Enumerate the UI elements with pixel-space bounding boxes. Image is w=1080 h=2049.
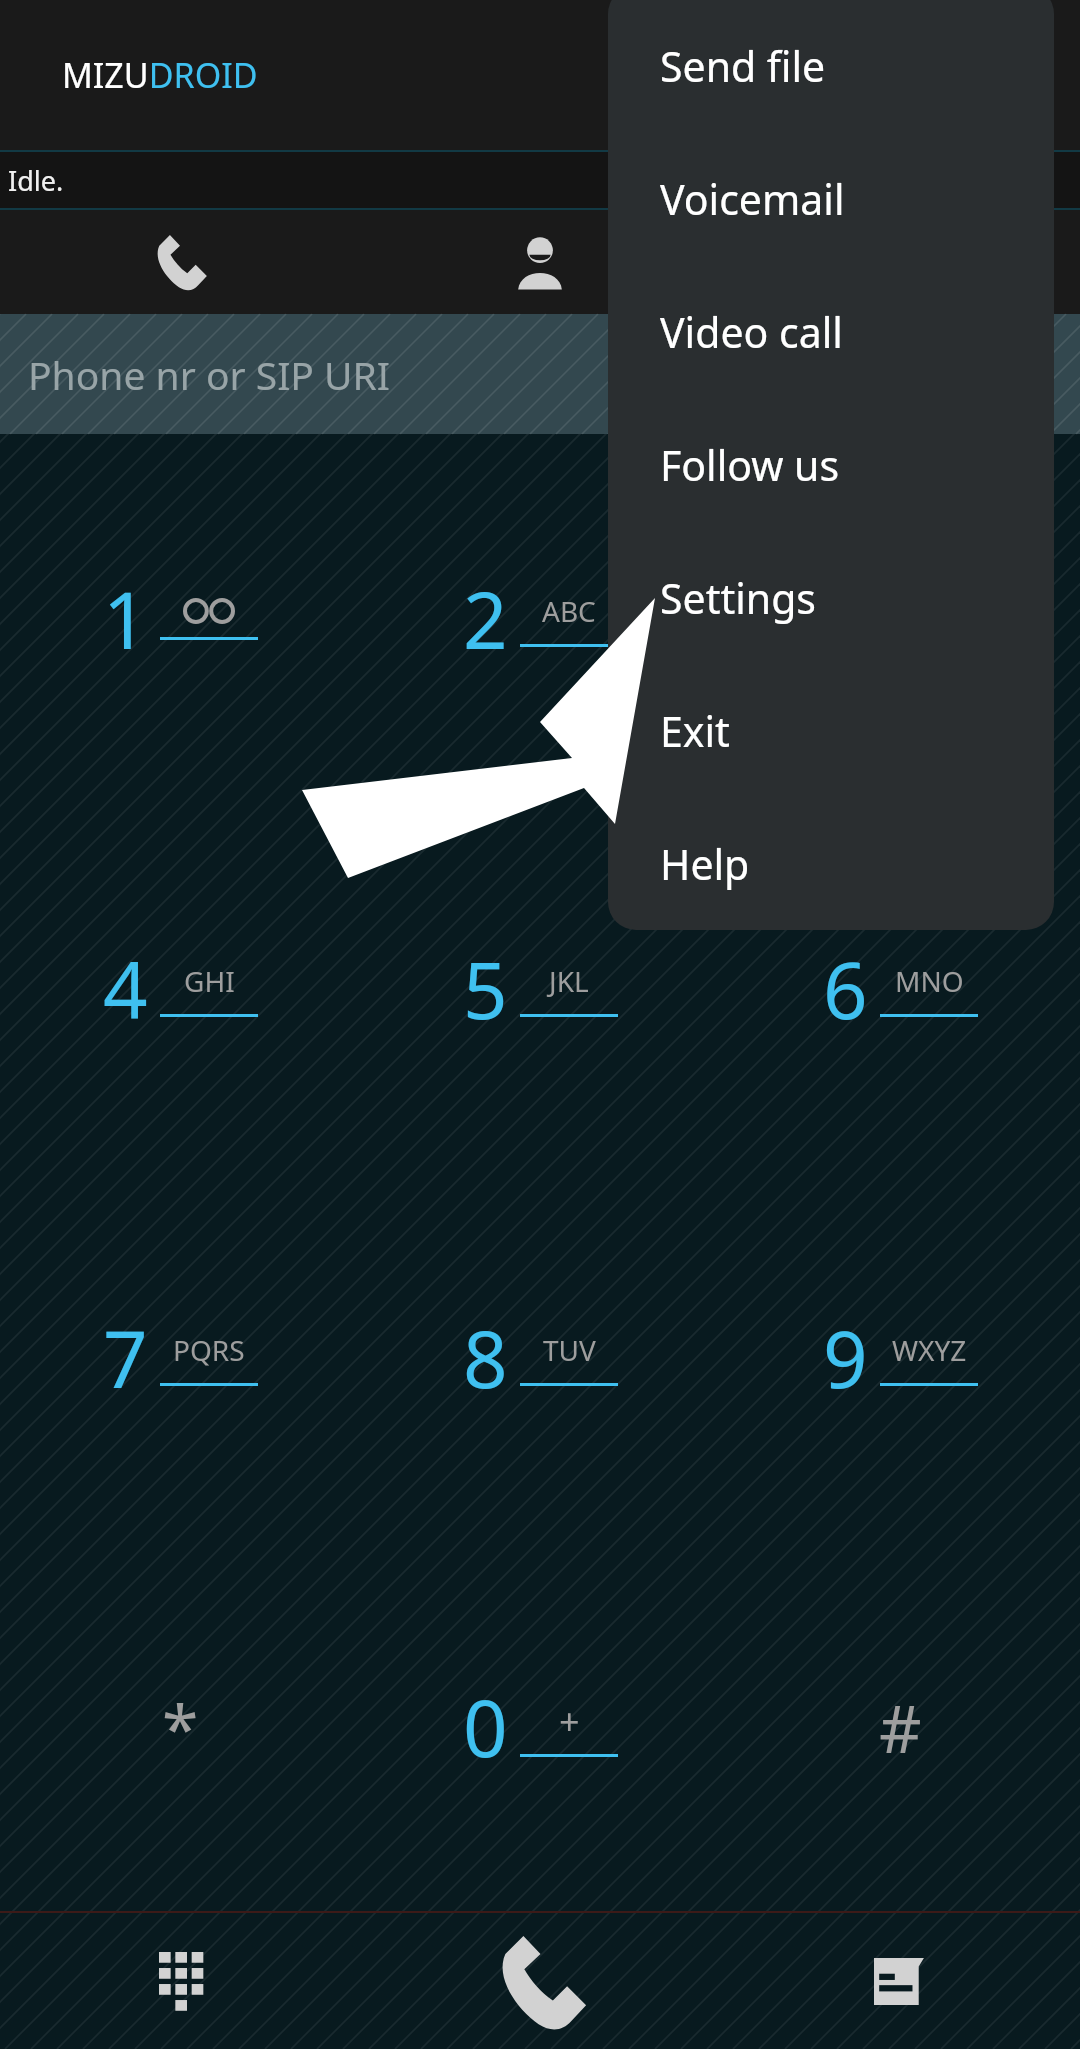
button[interactable]: # [720,1542,1080,1911]
staticText: 4 [103,936,148,1042]
button[interactable]: * [0,1542,360,1911]
button[interactable]: 0 [360,1542,720,1911]
staticText: GHI [184,962,235,1000]
staticText: Follow us [660,437,840,493]
button[interactable]: Dialer [0,210,360,314]
button[interactable]: Help [608,797,1054,930]
button[interactable]: 2 [360,434,720,804]
staticText: 5 [463,936,508,1042]
button[interactable]: Settings [608,531,1054,664]
button[interactable]: Exit [608,664,1054,797]
staticText: 2 [463,566,508,672]
button[interactable]: 9 [720,1173,1080,1542]
button[interactable]: Contacts [360,210,720,314]
button[interactable]: Voicemail [608,132,1054,265]
staticText: MNO [895,962,964,1000]
staticText: 8 [463,1305,508,1411]
staticText: 6 [823,936,868,1042]
button[interactable]: Follow us [608,398,1054,531]
staticText: Help [660,836,750,892]
button[interactable]: Video call [608,265,1054,398]
staticText: # [879,1682,922,1772]
staticText: 1 [103,566,148,672]
staticText: PQRS [173,1331,245,1369]
staticText: Phone nr or SIP URI [28,348,391,401]
button[interactable]: Call [360,1913,720,2049]
button[interactable]: 8 [360,1173,720,1542]
staticText: Idle. [8,162,64,199]
staticText: Voicemail [660,171,845,227]
staticText: 7 [103,1305,148,1411]
staticText: 0 [463,1674,508,1780]
button[interactable]: Send file [608,0,1054,132]
button[interactable]: 5 [360,804,720,1173]
staticText: + [559,1697,580,1746]
button[interactable]: 1 [0,434,360,804]
button[interactable]: 7 [0,1173,360,1542]
button[interactable]: Phone nr or SIP URI [0,314,1080,434]
button[interactable]: Call log [720,1913,1080,2049]
staticText: * [162,1682,199,1772]
staticText: Send file [660,38,826,94]
staticText: ABC [542,592,596,630]
staticText: 9 [823,1305,868,1411]
staticText: Exit [660,703,730,759]
staticText: Settings [660,570,817,626]
button[interactable]: 4 [0,804,360,1173]
staticText: Video call [660,304,843,360]
button[interactable]: Keypad [0,1913,360,2049]
staticText: MIZUDROID [62,52,258,98]
staticText: JKL [549,962,589,1000]
staticText: TUV [543,1331,596,1369]
button[interactable]: 3 [720,434,1080,804]
button[interactable]: 6 [720,804,1080,1173]
staticText: WXYZ [892,1331,967,1369]
